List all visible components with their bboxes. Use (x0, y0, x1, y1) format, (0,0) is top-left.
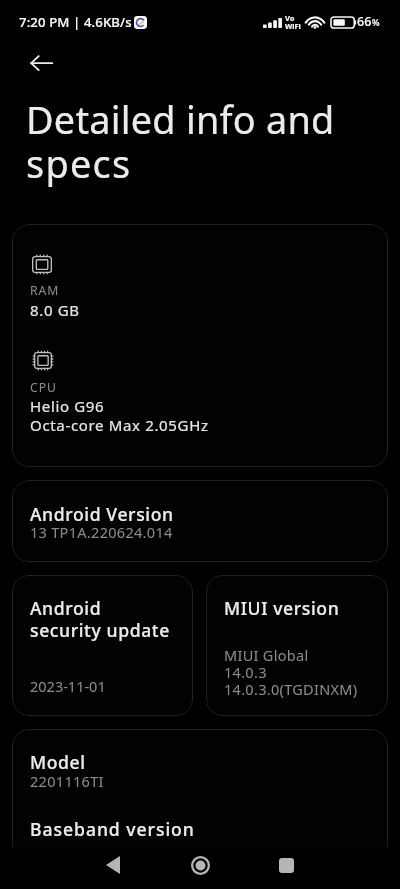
button[interactable]: MIUI version (206, 575, 388, 716)
staticText: RAM (30, 285, 60, 298)
staticText: CPU (30, 382, 57, 395)
button[interactable]: Android security update (12, 575, 193, 716)
staticText: MIUI Global 14.0.3 14.0.3.0(TGDINXM) (224, 648, 358, 699)
staticText: Helio G96 Octa-core Max 2.05GHz (30, 397, 209, 435)
staticText: Detailed info and (26, 99, 335, 143)
staticText: MIUI version (224, 598, 340, 620)
button[interactable]: Recents (266, 845, 306, 885)
button[interactable]: RAM (12, 224, 388, 467)
staticText: Model (30, 753, 86, 773)
staticText: WiFi (285, 22, 301, 30)
staticText: % (372, 18, 380, 28)
staticText: Vo (285, 14, 295, 22)
button[interactable]: Android Version (12, 480, 388, 562)
staticText: 13 TP1A.220624.014 (30, 525, 173, 541)
staticText: 8.0 GB (30, 303, 80, 320)
staticText: specs (26, 143, 132, 187)
staticText: Android Version (30, 505, 174, 525)
staticText: 7:20 PM | 4.6KB/s (19, 14, 132, 30)
button[interactable]: Model (12, 729, 388, 889)
staticText: Android security update (30, 598, 170, 642)
staticText: 2023-11-01 (30, 679, 106, 695)
staticText: 2201116TI (30, 773, 104, 791)
staticText: Baseband version (30, 820, 195, 840)
button[interactable]: Back (93, 845, 133, 885)
button[interactable]: Home (180, 845, 220, 885)
button[interactable]: Back (19, 51, 53, 75)
staticText: 66 (357, 15, 372, 29)
